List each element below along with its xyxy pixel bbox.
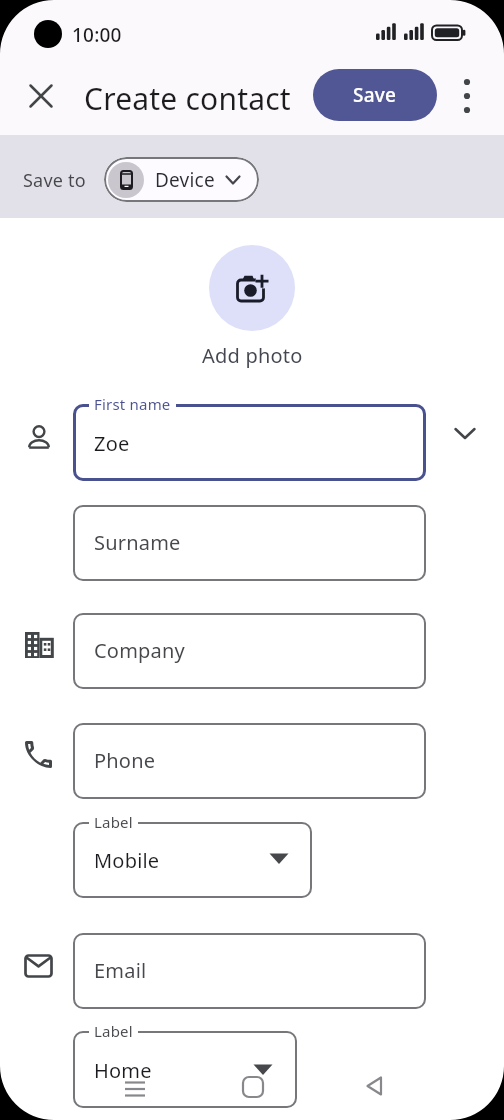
staticText: Zoe — [94, 430, 130, 457]
button[interactable] — [73, 505, 426, 581]
staticText: Add photo — [202, 342, 303, 369]
button[interactable]: Device — [104, 157, 259, 202]
staticText: Company — [94, 637, 185, 664]
staticText: Label — [94, 812, 133, 832]
staticText: Surname — [94, 529, 181, 556]
button[interactable] — [29, 84, 53, 108]
staticText: Save to — [23, 168, 86, 193]
staticText: Device — [155, 167, 215, 193]
button[interactable] — [73, 822, 312, 898]
staticText: Home — [94, 1057, 152, 1084]
button[interactable] — [363, 1074, 387, 1098]
button[interactable] — [268, 852, 290, 865]
staticText: Phone — [94, 747, 156, 774]
staticText: Save — [353, 82, 397, 108]
staticText: First name — [94, 394, 171, 414]
button[interactable] — [241, 1075, 265, 1099]
button[interactable] — [73, 404, 426, 481]
button[interactable] — [252, 1063, 274, 1076]
button[interactable] — [452, 425, 478, 441]
button[interactable] — [73, 933, 426, 1009]
button[interactable] — [455, 77, 479, 115]
staticText: Email — [94, 957, 147, 984]
button[interactable]: Save — [313, 69, 437, 121]
staticText: 10:00 — [72, 22, 122, 48]
staticText: Create contact — [84, 78, 291, 119]
button[interactable] — [73, 723, 426, 799]
staticText: Label — [94, 1021, 133, 1041]
button[interactable] — [73, 613, 426, 689]
staticText: Mobile — [94, 847, 160, 874]
button[interactable] — [73, 1031, 297, 1108]
button[interactable] — [123, 1080, 147, 1099]
button[interactable] — [209, 245, 295, 331]
